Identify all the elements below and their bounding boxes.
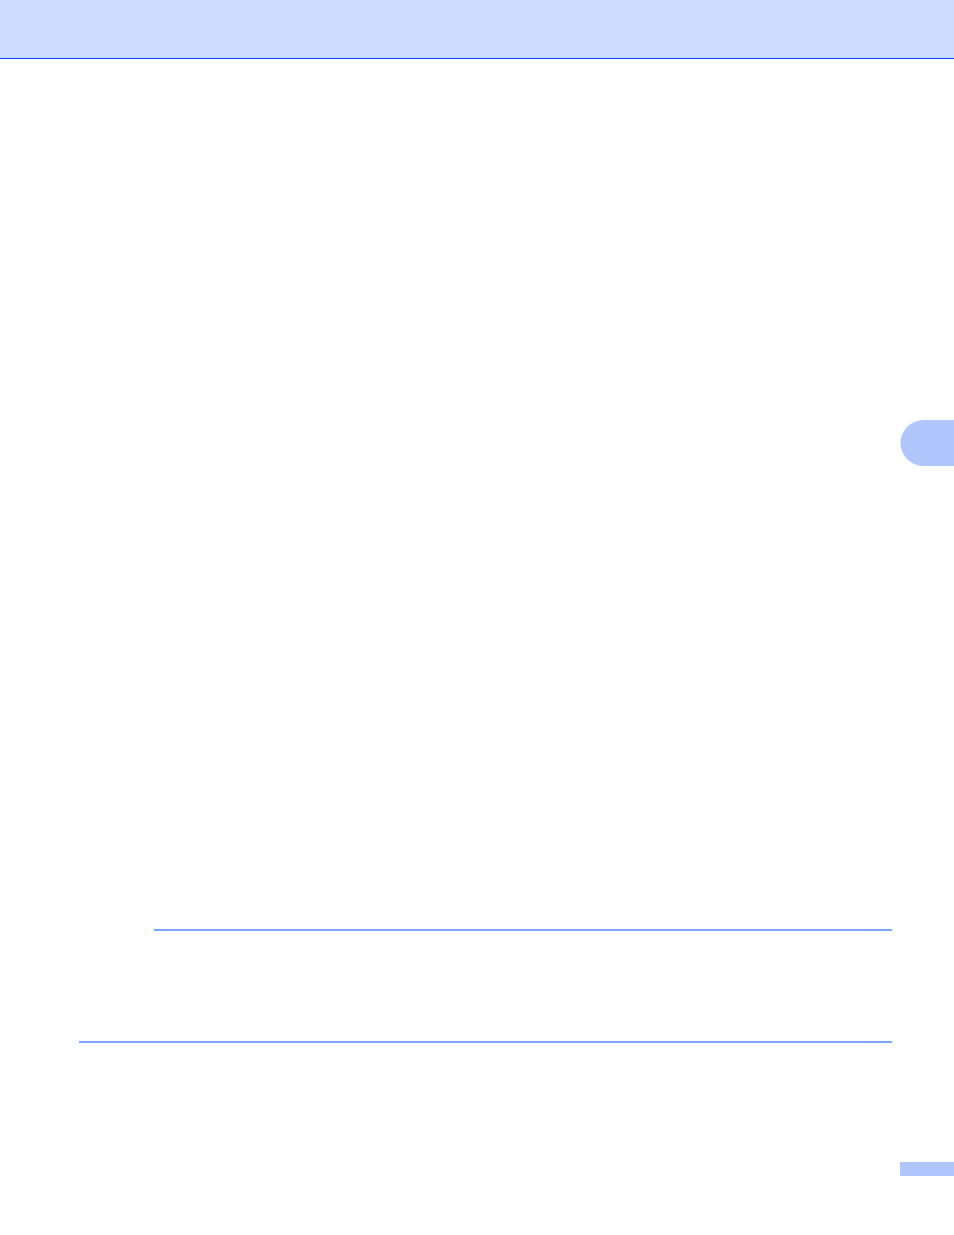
- button[interactable]: Scroll position handle: [900, 420, 954, 466]
- button[interactable]: List row 1: [154, 905, 892, 955]
- button[interactable]: List row 2: [79, 1017, 892, 1067]
